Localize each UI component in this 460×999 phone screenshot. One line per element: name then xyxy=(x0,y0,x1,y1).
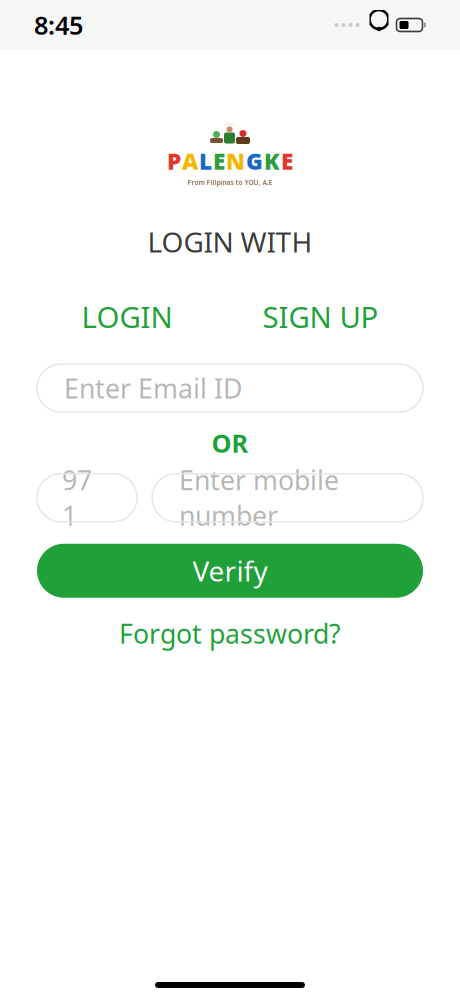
staticText: E xyxy=(213,146,225,176)
staticText: OR xyxy=(211,426,248,460)
button[interactable]: Enter mobile number xyxy=(152,474,423,522)
staticText: Enter Email ID xyxy=(64,370,242,406)
staticText: N xyxy=(226,146,245,176)
staticText: LOGIN WITH xyxy=(147,223,312,260)
staticText: G xyxy=(246,146,263,176)
staticText: SIGN UP xyxy=(262,297,378,336)
staticText: LOGIN xyxy=(81,297,172,336)
button[interactable]: Verify xyxy=(37,544,423,598)
staticText: Enter mobile number xyxy=(179,462,339,533)
button[interactable]: Enter Email ID xyxy=(37,364,423,412)
staticText: 8:45 xyxy=(34,8,83,42)
staticText: L xyxy=(199,146,212,176)
staticText: K xyxy=(264,146,280,176)
staticText: 971 xyxy=(62,462,92,533)
staticText: P xyxy=(167,146,181,176)
staticText: E xyxy=(281,146,293,176)
button[interactable]: SIGN UP xyxy=(248,291,392,342)
button[interactable]: LOGIN xyxy=(67,291,186,342)
staticText: Forgot password? xyxy=(119,616,341,651)
staticText: From Filipinas to YOU, A.E xyxy=(187,178,272,187)
staticText: A xyxy=(182,146,198,176)
button[interactable]: 971 xyxy=(37,474,137,522)
button[interactable]: Forgot password? xyxy=(105,610,355,657)
staticText: Verify xyxy=(192,552,267,589)
